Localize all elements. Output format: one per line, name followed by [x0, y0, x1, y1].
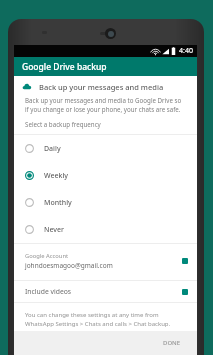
- staticText: You can change these settings at any tim…: [25, 311, 183, 328]
- staticText: Back up your messages and media to Googl…: [25, 96, 185, 114]
- button[interactable]: Daily: [14, 135, 197, 162]
- button[interactable]: DONE: [157, 336, 187, 350]
- button[interactable]: Google Account: [14, 249, 197, 273]
- staticText: Daily: [44, 144, 61, 154]
- staticText: johndoesmagoo@gmail.com: [25, 261, 113, 270]
- staticText: Include videos: [25, 287, 182, 296]
- button[interactable]: Weekly: [14, 162, 197, 189]
- staticText: Google Drive backup: [22, 61, 107, 73]
- button[interactable]: Include videos: [14, 281, 197, 302]
- staticText: 4:40: [179, 46, 193, 56]
- staticText: Select a backup frequency: [25, 120, 101, 128]
- staticText: Weekly: [44, 171, 68, 181]
- button[interactable]: Never: [14, 216, 197, 243]
- staticText: Never: [44, 225, 64, 235]
- staticText: Back up your messages and media: [39, 82, 164, 92]
- button[interactable]: Google Drive backup: [14, 57, 197, 76]
- button[interactable]: Monthly: [14, 189, 197, 216]
- staticText: Monthly: [44, 198, 72, 208]
- staticText: Google Account: [25, 252, 69, 260]
- staticText: DONE: [163, 339, 181, 347]
